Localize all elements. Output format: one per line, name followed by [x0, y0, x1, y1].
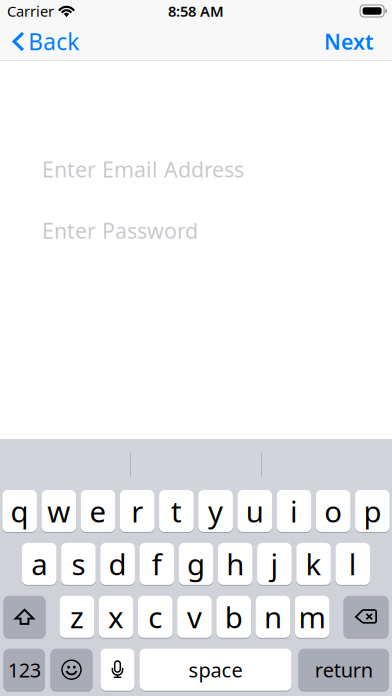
- staticText: t: [171, 491, 182, 530]
- button[interactable]: Dictate: [100, 649, 134, 691]
- staticText: space: [188, 656, 242, 683]
- button[interactable]: c: [138, 596, 173, 638]
- button[interactable]: x: [99, 596, 133, 638]
- staticText: q: [11, 491, 29, 530]
- button[interactable]: t: [159, 490, 194, 532]
- button[interactable]: j: [257, 543, 292, 585]
- staticText: m: [299, 597, 326, 636]
- staticText: i: [290, 491, 298, 530]
- button[interactable]: d: [100, 543, 135, 585]
- staticText: Carrier: [7, 1, 54, 21]
- staticText: f: [152, 544, 162, 583]
- staticText: l: [349, 544, 357, 583]
- button[interactable]: b: [216, 596, 251, 638]
- staticText: p: [363, 491, 381, 530]
- button[interactable]: g: [179, 543, 213, 585]
- button[interactable]: p: [355, 490, 390, 532]
- staticText: y: [208, 491, 223, 530]
- button[interactable]: s: [61, 543, 96, 585]
- button[interactable]: i: [277, 490, 311, 532]
- button[interactable]: Delete: [343, 596, 388, 638]
- staticText: d: [109, 544, 127, 583]
- button[interactable]: h: [218, 543, 252, 585]
- button[interactable]: e: [81, 490, 115, 532]
- staticText: v: [187, 597, 202, 636]
- button[interactable]: y: [198, 490, 233, 532]
- staticText: r: [131, 491, 143, 530]
- button[interactable]: Emoji: [50, 649, 92, 691]
- staticText: Enter Email Address: [42, 155, 244, 183]
- button[interactable]: z: [60, 596, 94, 638]
- staticText: h: [226, 544, 244, 583]
- staticText: a: [31, 544, 47, 583]
- staticText: s: [71, 544, 85, 583]
- button[interactable]: u: [237, 490, 272, 532]
- staticText: w: [47, 491, 70, 530]
- button[interactable]: n: [256, 596, 290, 638]
- staticText: j: [270, 544, 278, 583]
- staticText: Enter Password: [42, 216, 198, 245]
- button[interactable]: 123: [3, 649, 45, 691]
- button[interactable]: o: [316, 490, 350, 532]
- staticText: 8:58 AM: [168, 1, 224, 21]
- button[interactable]: space: [139, 649, 291, 691]
- staticText: Next: [324, 27, 374, 56]
- staticText: g: [187, 544, 205, 583]
- staticText: x: [108, 597, 124, 636]
- staticText: o: [324, 491, 342, 530]
- staticText: b: [225, 597, 243, 636]
- staticText: 123: [8, 656, 41, 683]
- staticText: k: [306, 544, 322, 583]
- button[interactable]: v: [177, 596, 212, 638]
- button[interactable]: m: [295, 596, 329, 638]
- button[interactable]: k: [296, 543, 331, 585]
- button[interactable]: r: [120, 490, 154, 532]
- staticText: return: [315, 656, 373, 683]
- button[interactable]: l: [335, 543, 370, 585]
- staticText: n: [264, 597, 282, 636]
- button[interactable]: q: [2, 490, 37, 532]
- button[interactable]: Next: [306, 22, 392, 61]
- staticText: u: [246, 491, 264, 530]
- button[interactable]: return: [298, 649, 389, 691]
- button[interactable]: Shift: [3, 596, 45, 638]
- staticText: c: [148, 597, 162, 636]
- button[interactable]: w: [41, 490, 76, 532]
- button[interactable]: Back: [0, 22, 87, 61]
- staticText: Back: [28, 26, 79, 56]
- staticText: e: [89, 491, 106, 530]
- staticText: z: [70, 597, 84, 636]
- button[interactable]: a: [22, 543, 56, 585]
- button[interactable]: f: [139, 543, 174, 585]
